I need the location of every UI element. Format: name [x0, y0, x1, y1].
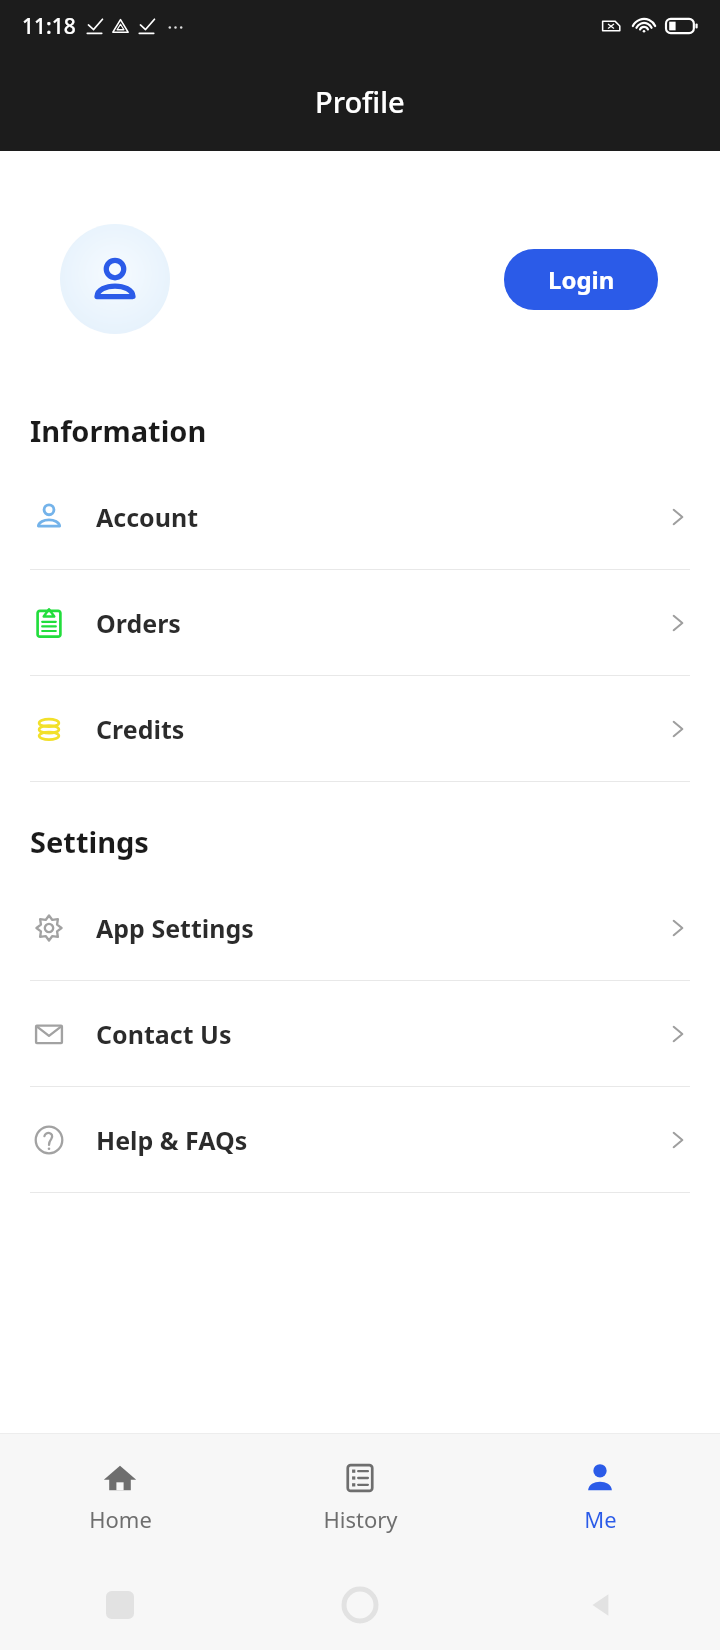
button[interactable]: Credits	[0, 676, 720, 781]
button[interactable]: Contact Us	[0, 981, 720, 1086]
staticText: Help & FAQs	[96, 1123, 248, 1157]
button[interactable]: Login	[30, 181, 690, 377]
staticText: Home	[89, 1504, 152, 1534]
button[interactable]: Home	[0, 1434, 240, 1560]
staticText: Contact Us	[96, 1017, 232, 1051]
button[interactable]: Login	[504, 249, 658, 310]
staticText: Account	[96, 500, 199, 534]
staticText: Me	[584, 1504, 617, 1534]
staticText: Settings	[30, 822, 149, 861]
staticText: Login	[548, 263, 615, 296]
button[interactable]: Account	[0, 464, 720, 569]
staticText: App Settings	[96, 911, 254, 945]
button[interactable]: Help & FAQs	[0, 1087, 720, 1192]
button[interactable]: Orders	[0, 570, 720, 675]
staticText: Credits	[96, 712, 185, 746]
staticText: Information	[30, 411, 207, 450]
staticText: Profile	[315, 82, 405, 121]
staticText: Orders	[96, 606, 181, 640]
button[interactable]: History	[240, 1434, 480, 1560]
button[interactable]: Me	[480, 1434, 720, 1560]
staticText: 11:18	[22, 12, 76, 41]
button[interactable]: App Settings	[0, 875, 720, 980]
staticText: History	[323, 1504, 398, 1534]
